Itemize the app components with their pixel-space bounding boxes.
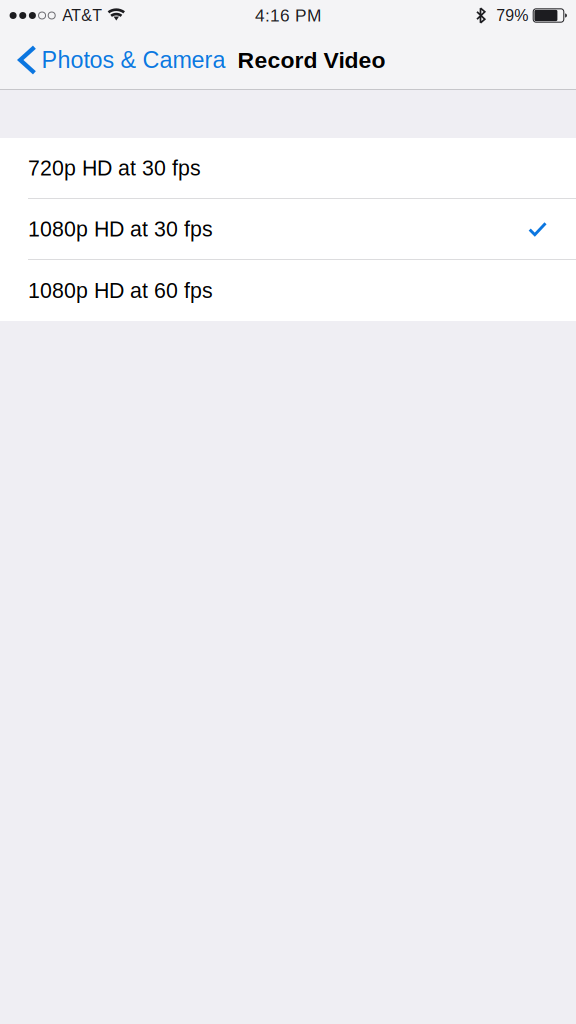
staticText: 1080p HD at 60 fps	[28, 279, 213, 302]
button[interactable]: 1080p HD at 30 fps	[0, 199, 576, 260]
staticText: 1080p HD at 30 fps	[28, 217, 213, 241]
staticText: Record Video	[238, 47, 386, 73]
staticText: Photos & Camera	[42, 47, 226, 73]
button[interactable]: Photos & Camera	[0, 31, 238, 89]
button[interactable]: 1080p HD at 60 fps	[0, 260, 576, 321]
staticText: 79%	[496, 7, 528, 24]
staticText: 720p HD at 30 fps	[28, 156, 201, 180]
staticText: AT&T	[62, 7, 102, 24]
button[interactable]: 720p HD at 30 fps	[0, 138, 576, 199]
staticText: 4:16 PM	[255, 6, 321, 25]
